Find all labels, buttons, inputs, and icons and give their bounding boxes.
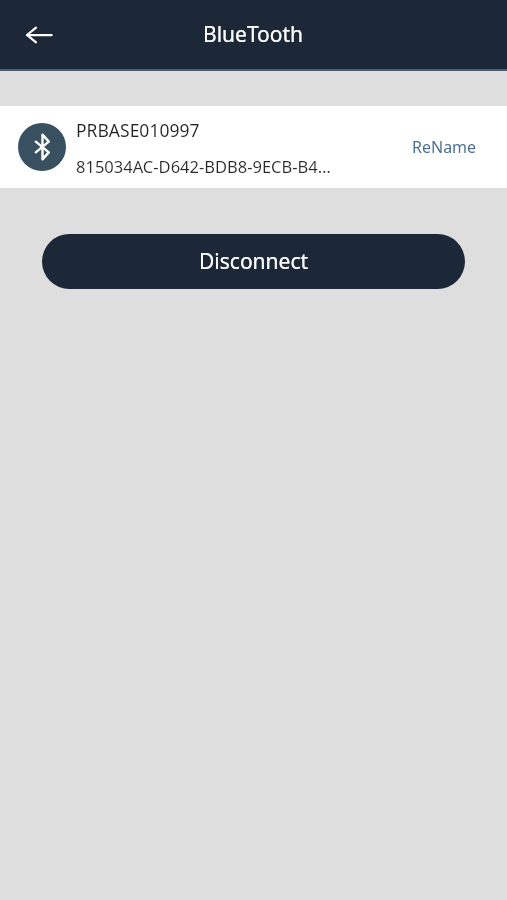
button[interactable]: PRBASE010997 <box>0 106 507 188</box>
button[interactable]: Disconnect <box>42 234 465 289</box>
staticText: Disconnect <box>199 247 309 276</box>
staticText: PRBASE010997 <box>76 118 200 142</box>
staticText: BlueTooth <box>203 20 304 49</box>
staticText: 815034AC-D642-BDB8-9ECB-B4… <box>76 155 331 177</box>
button[interactable]: Back <box>16 12 62 58</box>
button[interactable]: ReName <box>400 128 489 166</box>
staticText: ReName <box>412 136 477 158</box>
